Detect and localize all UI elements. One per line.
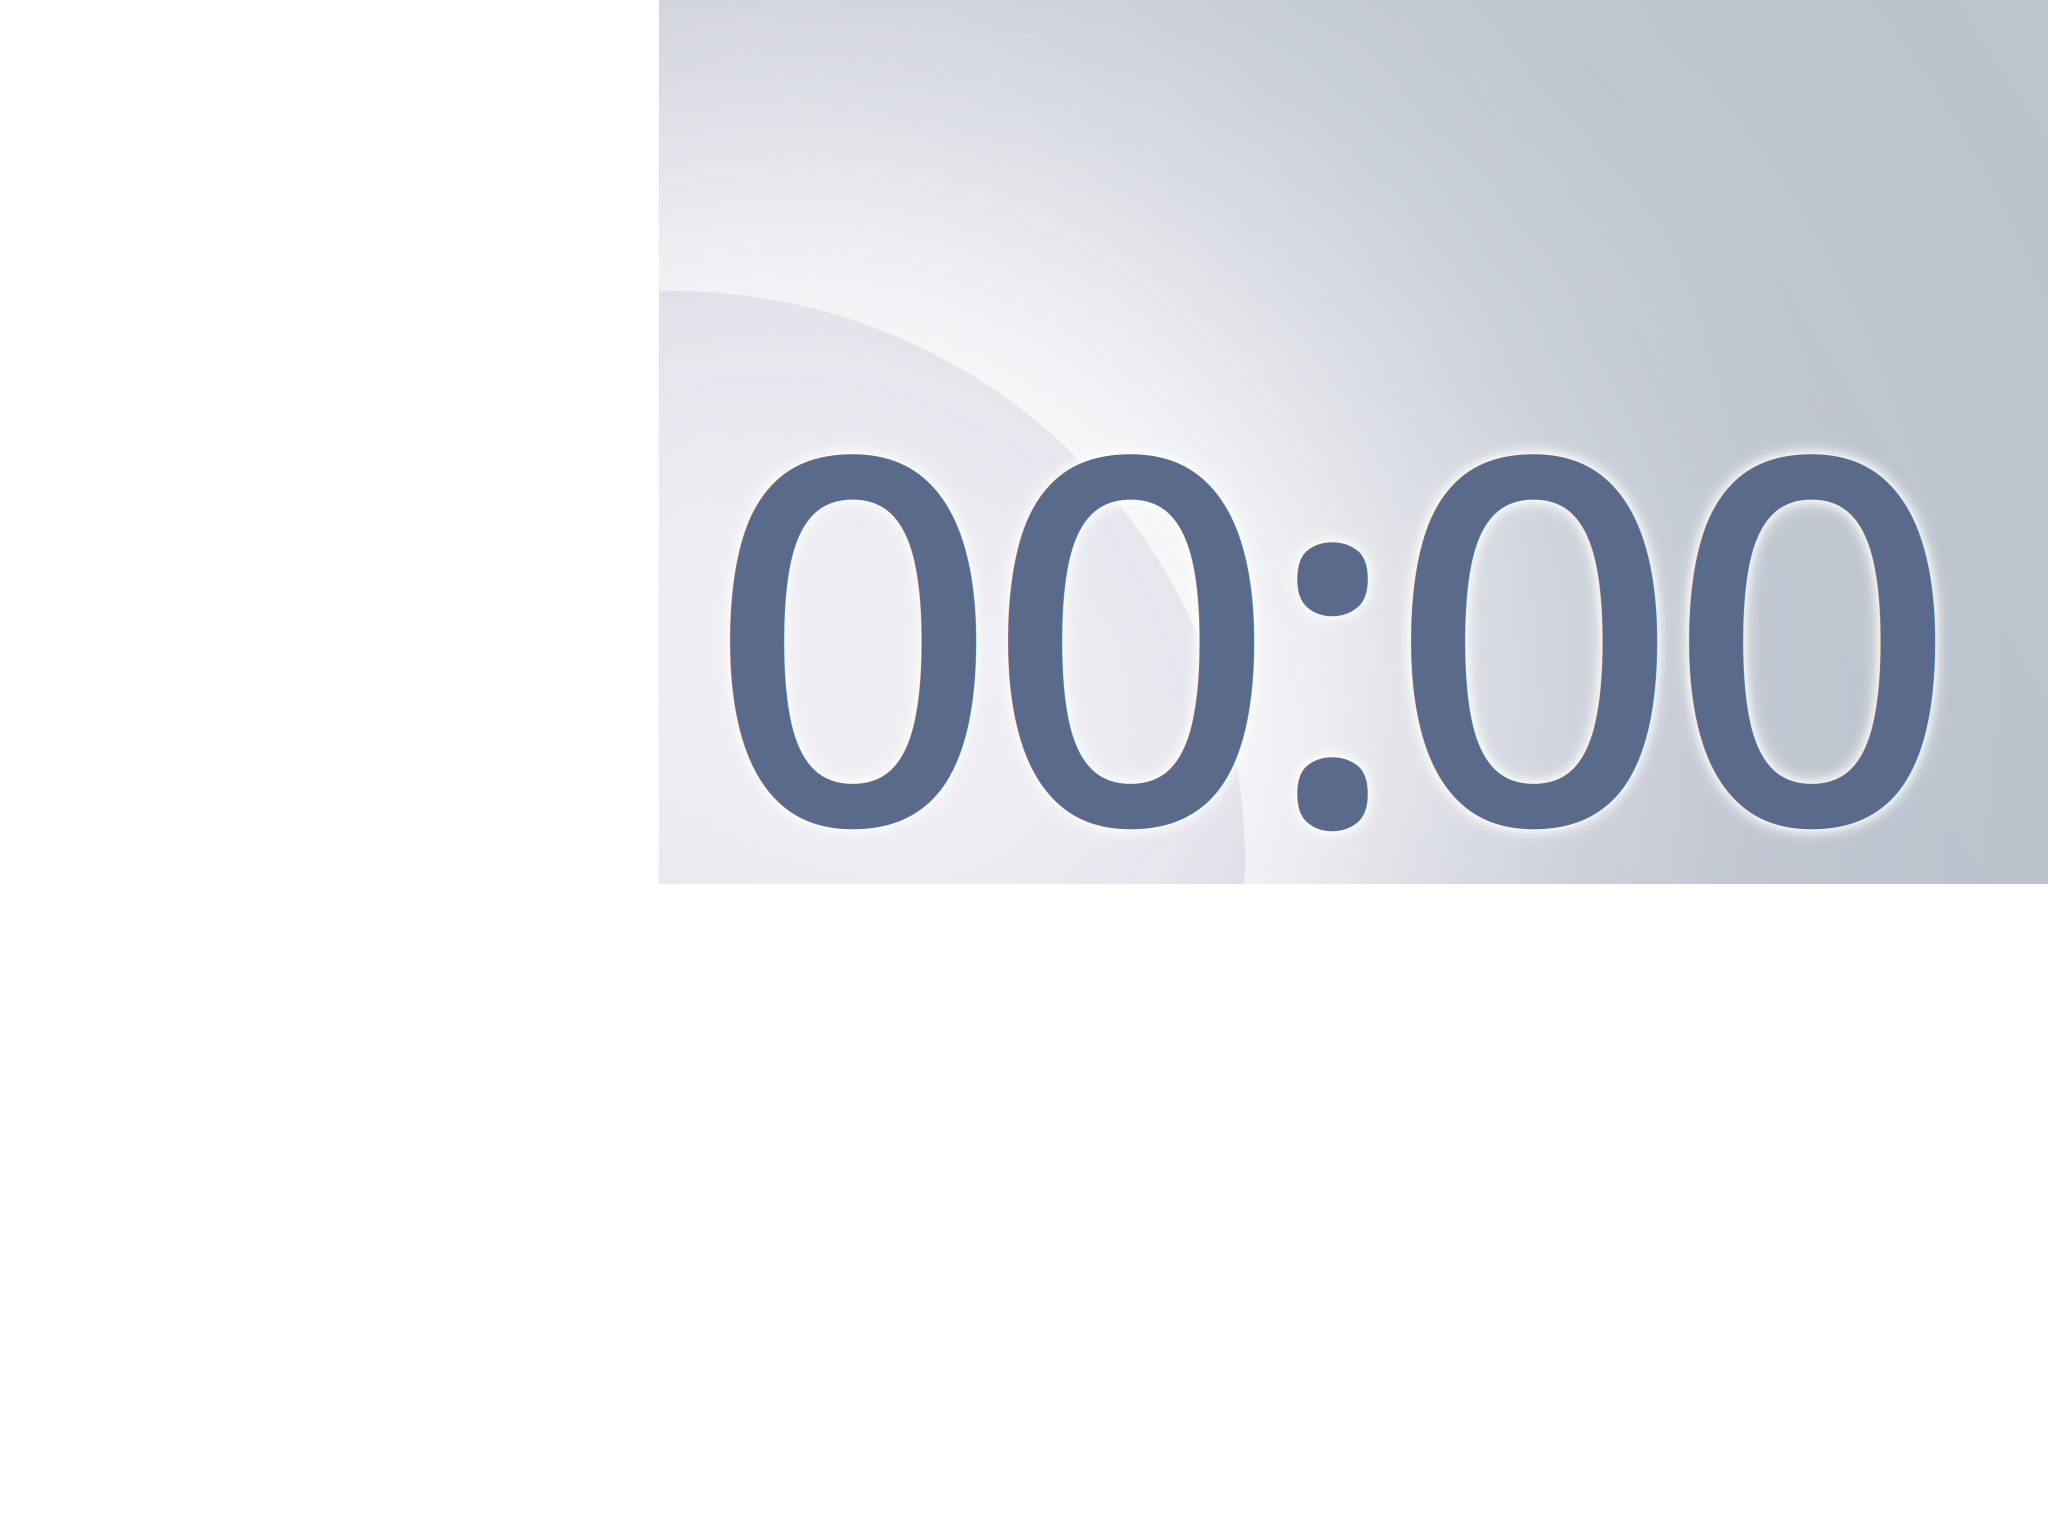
staticText: 00:00 [707, 287, 1958, 965]
